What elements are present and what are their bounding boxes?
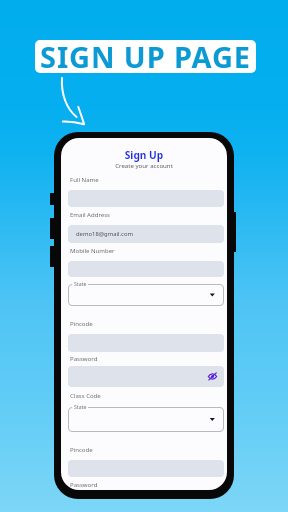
button[interactable]: demo18@gmail.com [68, 225, 224, 243]
staticText: State [74, 280, 87, 287]
staticText: State [74, 403, 87, 410]
staticText: Class Code [70, 392, 101, 400]
staticText: Full Name [70, 176, 99, 184]
button[interactable]: Toggle password visibility [208, 372, 217, 381]
staticText: Create your account [61, 161, 227, 169]
staticText: Pincode [70, 320, 93, 328]
button[interactable]: Toggle password visibility [68, 366, 224, 387]
button[interactable]: State [68, 284, 224, 306]
staticText: Mobile Number [70, 247, 115, 255]
staticText: demo18@gmail.com [76, 230, 134, 238]
staticText: Pincode [70, 446, 93, 454]
staticText: Email Address [70, 211, 110, 219]
staticText: Sign Up [61, 148, 227, 162]
staticText: Password [70, 355, 98, 363]
button[interactable]: SIGN UP PAGE [35, 40, 256, 73]
staticText: Password [70, 481, 98, 489]
staticText: SIGN UP PAGE [40, 40, 251, 70]
button[interactable]: State [68, 407, 224, 432]
